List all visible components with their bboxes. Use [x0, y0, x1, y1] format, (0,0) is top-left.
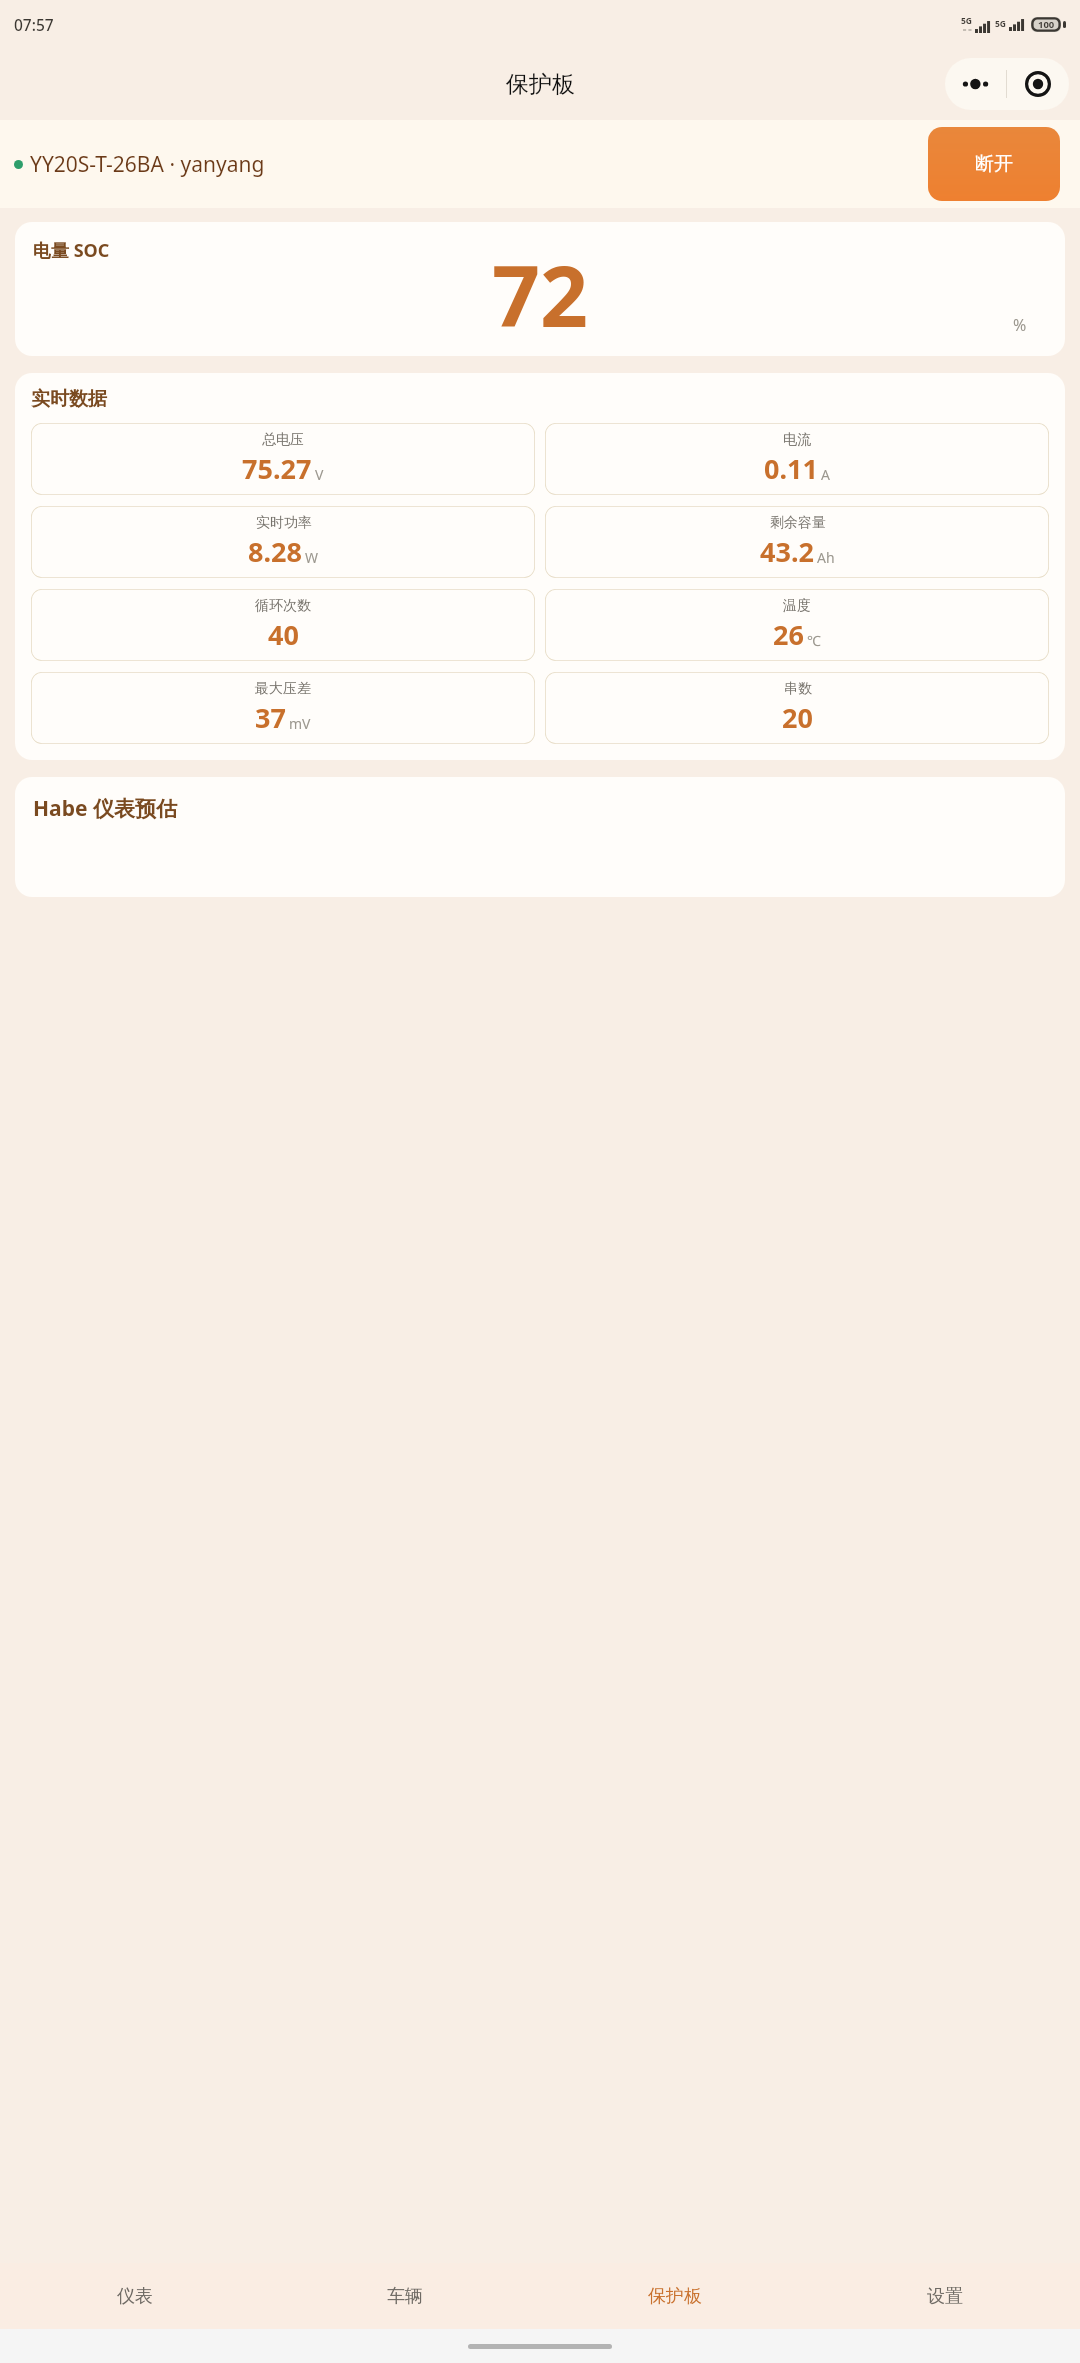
staticText: 保护板: [648, 2285, 702, 2308]
button[interactable]: 串数: [545, 672, 1049, 744]
button[interactable]: 电量 SOC: [15, 222, 1065, 356]
button[interactable]: 设置: [810, 2263, 1080, 2329]
staticText: 设置: [927, 2285, 963, 2308]
staticText: 20: [782, 699, 813, 736]
staticText: 72: [492, 237, 589, 351]
staticText: 电流: [783, 431, 811, 449]
button[interactable]: 温度: [545, 589, 1049, 661]
staticText: Habe 仪表预估: [33, 794, 177, 823]
staticText: V: [315, 465, 324, 484]
button[interactable]: 断开: [928, 127, 1060, 201]
button[interactable]: Habe 仪表预估: [15, 777, 1065, 897]
button[interactable]: 实时功率: [31, 506, 535, 578]
staticText: 37: [255, 699, 286, 736]
staticText: 剩余容量: [770, 514, 826, 532]
staticText: Ah: [817, 548, 835, 567]
staticText: 40: [268, 616, 299, 653]
staticText: A: [821, 465, 830, 484]
staticText: 循环次数: [255, 597, 311, 615]
staticText: 温度: [783, 597, 811, 615]
staticText: ℃: [807, 631, 821, 650]
button[interactable]: Close: [1007, 58, 1069, 110]
staticText: 100: [1038, 18, 1055, 31]
staticText: 0.11: [764, 450, 818, 487]
button[interactable]: 最大压差: [31, 672, 535, 744]
staticText: YY20S-T-26BA · yanyang: [30, 150, 265, 179]
staticText: 总电压: [262, 431, 304, 449]
staticText: 串数: [784, 680, 812, 698]
staticText: 仪表: [117, 2285, 153, 2308]
button[interactable]: 剩余容量: [545, 506, 1049, 578]
staticText: 最大压差: [255, 680, 311, 698]
staticText: 车辆: [387, 2285, 423, 2308]
staticText: 保护板: [506, 70, 575, 99]
staticText: 实时功率: [256, 514, 312, 532]
staticText: 75.27: [242, 450, 312, 487]
staticText: 电量 SOC: [33, 238, 110, 263]
button[interactable]: 总电压: [31, 423, 535, 495]
button[interactable]: 循环次数: [31, 589, 535, 661]
button[interactable]: 车辆: [270, 2263, 540, 2329]
staticText: W: [305, 548, 319, 567]
staticText: mV: [289, 714, 311, 733]
staticText: 8.28: [248, 533, 302, 570]
staticText: 43.2: [760, 533, 814, 570]
button[interactable]: More: [945, 58, 1006, 110]
button[interactable]: 电流: [545, 423, 1049, 495]
button[interactable]: 保护板: [540, 2263, 810, 2329]
staticText: 5G: [995, 18, 1007, 30]
staticText: 07:57: [14, 14, 54, 35]
staticText: 5G: [961, 15, 973, 27]
staticText: 26: [773, 616, 804, 653]
staticText: 断开: [975, 152, 1013, 176]
staticText: %: [1013, 314, 1027, 336]
button[interactable]: 仪表: [0, 2263, 270, 2329]
staticText: 实时数据: [31, 387, 107, 411]
